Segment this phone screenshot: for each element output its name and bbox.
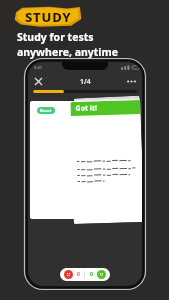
staticText: 9:41 [34,65,42,70]
staticText: 0 [77,271,80,278]
staticText: 0 [90,271,93,278]
staticText: Study for tests [17,30,94,44]
staticText: 1/4 [80,77,91,87]
staticText: anywhere, anytime [17,45,118,59]
button[interactable]: Didn't know it [64,270,73,279]
staticText: Got it! [75,103,98,114]
staticText: Reset [40,108,52,113]
button[interactable]: Got it! [70,100,142,224]
button[interactable]: Knew it [97,270,106,279]
button[interactable]: More options [125,75,138,88]
staticText: STUDY [25,8,72,26]
button[interactable]: Reset [30,101,82,219]
button[interactable]: Close [32,75,45,88]
